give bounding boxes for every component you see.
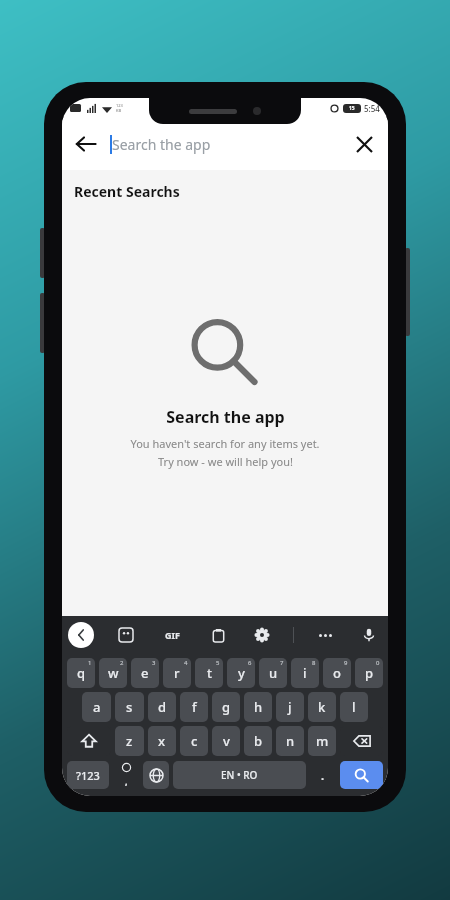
staticText: 7 [280, 659, 284, 667]
staticText: 3 [152, 659, 156, 667]
staticText: 5:54 [364, 103, 380, 114]
staticText: GIF [165, 629, 180, 641]
button[interactable]: r [163, 658, 191, 688]
staticText: v [223, 732, 230, 750]
staticText: q [77, 664, 86, 682]
staticText: m [316, 732, 329, 750]
button[interactable]: o [323, 658, 351, 688]
button[interactable]: y [227, 658, 255, 688]
button[interactable]: Clipboard [205, 622, 231, 648]
staticText: p [365, 664, 374, 682]
button[interactable]: v [212, 726, 240, 756]
button[interactable]: z [115, 726, 144, 756]
button[interactable]: ?123 [67, 761, 109, 789]
button[interactable]: q [67, 658, 95, 688]
button[interactable]: Settings [249, 622, 275, 648]
button[interactable]: Shift [67, 726, 111, 756]
button[interactable]: Back [62, 120, 110, 168]
staticText: d [158, 698, 167, 716]
button[interactable]: u [259, 658, 287, 688]
button[interactable]: l [340, 692, 368, 722]
staticText: 9 [344, 659, 348, 667]
staticText: c [191, 732, 198, 750]
button[interactable]: k [308, 692, 336, 722]
button[interactable]: c [180, 726, 208, 756]
button[interactable]: t [195, 658, 223, 688]
button[interactable]: . [310, 761, 336, 789]
staticText: z [126, 732, 133, 750]
button[interactable]: d [148, 692, 176, 722]
staticText: , [125, 775, 128, 787]
staticText: Recent Searchs [74, 182, 180, 201]
staticText: 2 [120, 659, 124, 667]
staticText: e [141, 664, 149, 682]
staticText: Search the app [112, 135, 211, 154]
button[interactable]: i [291, 658, 319, 688]
staticText: w [108, 664, 119, 682]
button[interactable]: a [82, 692, 111, 722]
button[interactable]: Back [68, 622, 94, 648]
staticText: 6 [248, 659, 252, 667]
staticText: 1 [88, 659, 92, 667]
staticText: y [238, 664, 245, 682]
staticText: You haven't search for any items yet. [130, 436, 320, 451]
button[interactable]: Stickers [113, 622, 139, 648]
staticText: Search the app [166, 406, 285, 428]
button[interactable]: More options [312, 622, 338, 648]
button[interactable]: w [99, 658, 127, 688]
staticText: t [207, 664, 212, 682]
button[interactable]: h [244, 692, 272, 722]
button[interactable]: Backspace [340, 726, 383, 756]
staticText: Try now - we will help you! [158, 454, 293, 469]
staticText: n [286, 732, 295, 750]
button[interactable]: x [148, 726, 176, 756]
staticText: 5 [216, 659, 220, 667]
staticText: r [174, 664, 180, 682]
staticText: 123 KB [116, 103, 123, 113]
button[interactable]: e [131, 658, 159, 688]
staticText: l [352, 698, 356, 716]
staticText: u [269, 664, 278, 682]
button[interactable]: m [308, 726, 336, 756]
button[interactable]: j [276, 692, 304, 722]
staticText: 0 [376, 659, 380, 667]
staticText: 4 [184, 659, 188, 667]
staticText: EN • RO [221, 768, 258, 782]
staticText: b [254, 732, 263, 750]
staticText: . [321, 768, 325, 783]
button[interactable]: p [355, 658, 383, 688]
staticText: i [303, 664, 307, 682]
staticText: h [254, 698, 263, 716]
button[interactable]: Language [143, 761, 169, 789]
staticText: x [158, 732, 166, 750]
button[interactable]: Search [340, 761, 383, 789]
staticText: 15 [349, 105, 355, 112]
staticText: 8 [312, 659, 316, 667]
button[interactable]: b [244, 726, 272, 756]
button[interactable]: g [212, 692, 240, 722]
button[interactable]: Voice input [356, 622, 382, 648]
button[interactable]: s [115, 692, 144, 722]
staticText: ?123 [76, 768, 100, 783]
staticText: g [222, 698, 231, 716]
staticText: j [288, 698, 292, 716]
staticText: s [126, 698, 133, 716]
button[interactable]: GIF [157, 620, 187, 650]
staticText: f [192, 698, 197, 716]
staticText: a [93, 698, 101, 716]
staticText: o [333, 664, 341, 682]
button[interactable]: Emoji [113, 761, 139, 789]
staticText: k [318, 698, 326, 716]
button[interactable]: f [180, 692, 208, 722]
button[interactable]: EN • RO [173, 761, 306, 789]
button[interactable]: Clear [340, 120, 388, 168]
button[interactable]: n [276, 726, 304, 756]
